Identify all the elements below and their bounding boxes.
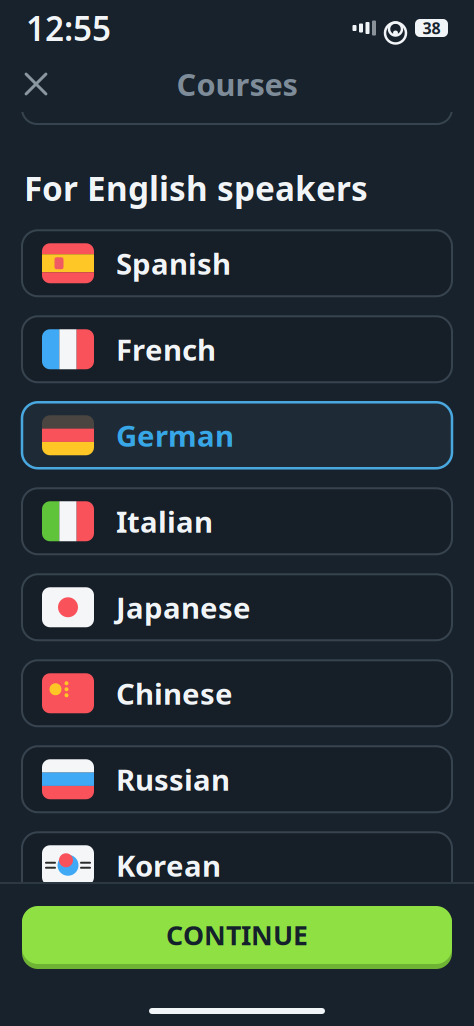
staticText: Italian (116, 502, 213, 541)
button[interactable]: Close (12, 60, 60, 108)
button[interactable]: Spanish (22, 230, 452, 296)
button[interactable]: French (22, 316, 452, 382)
staticText: German (116, 416, 234, 455)
staticText: Russian (116, 760, 230, 799)
staticText: 38 (422, 17, 440, 39)
staticText: CONTINUE (166, 917, 308, 953)
button[interactable]: Chinese (22, 660, 452, 726)
staticText: Korean (116, 846, 221, 885)
button[interactable]: German (22, 402, 452, 468)
staticText: French (116, 330, 216, 369)
button[interactable]: Japanese (22, 574, 452, 640)
button[interactable]: Italian (22, 488, 452, 554)
staticText: Chinese (116, 674, 233, 713)
button[interactable]: CONTINUE (0, 902, 474, 968)
button[interactable]: Korean (22, 832, 452, 898)
staticText: 12:55 (26, 6, 111, 50)
staticText: Spanish (116, 244, 231, 283)
button[interactable]: Russian (22, 746, 452, 812)
staticText: Courses (176, 64, 297, 104)
staticText: Japanese (116, 588, 251, 627)
staticText: For English speakers (24, 166, 368, 210)
